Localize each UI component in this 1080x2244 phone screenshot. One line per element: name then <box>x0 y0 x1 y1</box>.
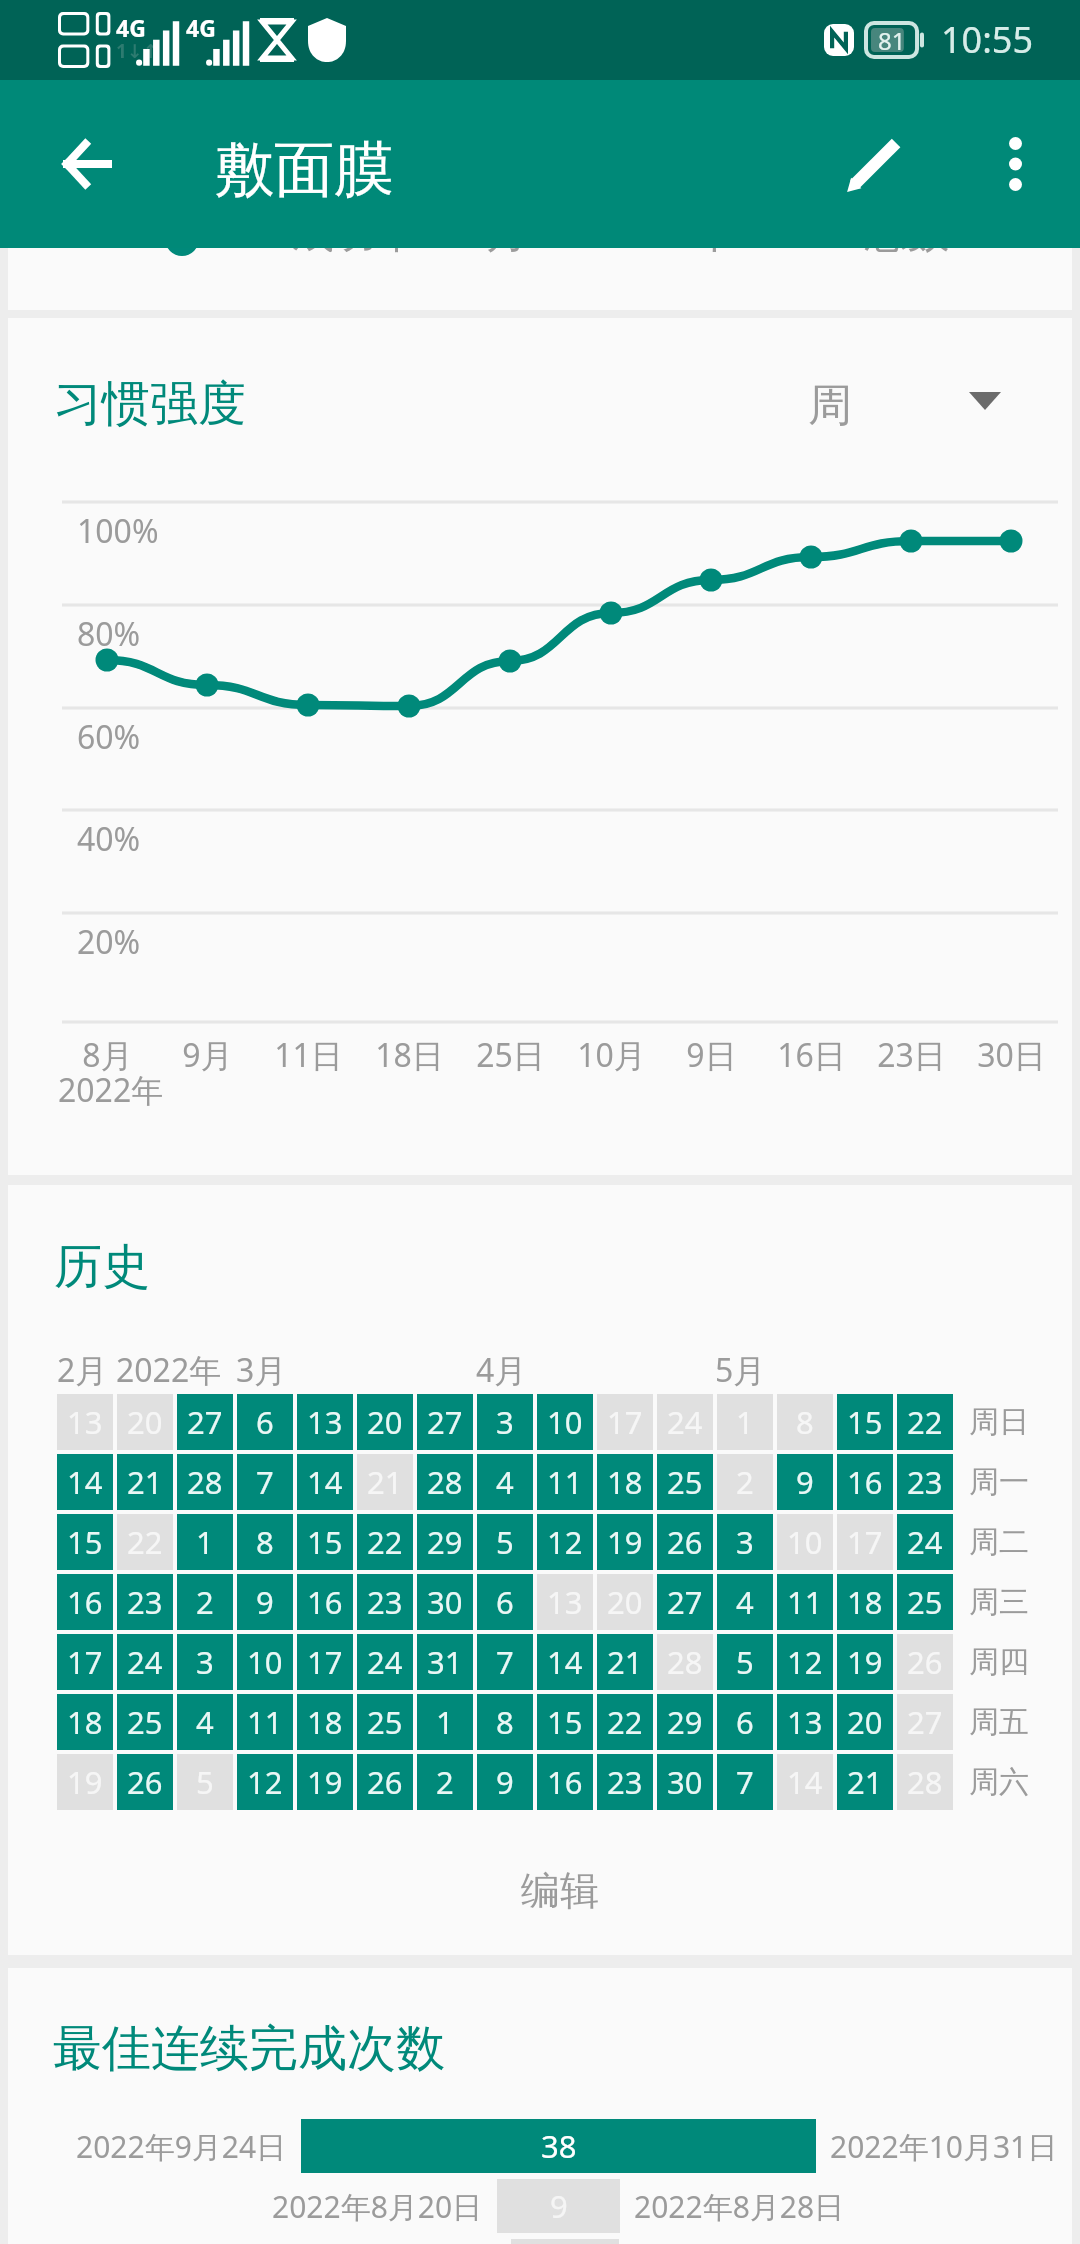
button[interactable]: 12 <box>777 1634 833 1690</box>
button[interactable]: 29 <box>417 1514 473 1570</box>
button[interactable]: 21 <box>597 1634 653 1690</box>
button[interactable]: 19 <box>297 1754 353 1810</box>
button[interactable]: 2 <box>417 1754 473 1810</box>
button[interactable]: 6 <box>717 1694 773 1750</box>
button[interactable]: 26 <box>657 1514 713 1570</box>
button[interactable]: 13 <box>297 1394 353 1450</box>
button[interactable]: 13 <box>57 1394 113 1450</box>
button[interactable]: 29 <box>657 1694 713 1750</box>
button[interactable]: 30 <box>417 1574 473 1630</box>
button[interactable]: 26 <box>117 1754 173 1810</box>
button[interactable]: 10 <box>237 1634 293 1690</box>
button[interactable]: 14 <box>297 1454 353 1510</box>
button[interactable]: 7 <box>237 1454 293 1510</box>
button[interactable]: 23 <box>117 1574 173 1630</box>
button[interactable]: 20 <box>597 1574 653 1630</box>
button[interactable]: 26 <box>897 1634 953 1690</box>
button[interactable]: 19 <box>597 1514 653 1570</box>
button[interactable]: 8 <box>477 1694 533 1750</box>
button[interactable]: 12 <box>237 1754 293 1810</box>
button[interactable]: 11 <box>537 1454 593 1510</box>
button[interactable]: 15 <box>297 1514 353 1570</box>
button[interactable]: 2 <box>177 1574 233 1630</box>
button[interactable]: 28 <box>897 1754 953 1810</box>
button[interactable]: 11 <box>777 1574 833 1630</box>
button[interactable]: 2 <box>717 1454 773 1510</box>
button[interactable]: 18 <box>837 1574 893 1630</box>
button[interactable]: 7 <box>717 1754 773 1810</box>
button[interactable]: 20 <box>837 1694 893 1750</box>
button[interactable]: 26 <box>357 1754 413 1810</box>
button[interactable]: 14 <box>57 1454 113 1510</box>
button[interactable]: 4 <box>717 1574 773 1630</box>
button[interactable]: 11 <box>237 1694 293 1750</box>
button[interactable]: 27 <box>657 1574 713 1630</box>
button[interactable]: 15 <box>57 1514 113 1570</box>
button[interactable]: 17 <box>297 1634 353 1690</box>
button[interactable]: 6 <box>237 1394 293 1450</box>
button[interactable]: 23 <box>897 1454 953 1510</box>
button[interactable]: 25 <box>117 1694 173 1750</box>
button[interactable]: 17 <box>597 1394 653 1450</box>
button[interactable]: 9 <box>477 1754 533 1810</box>
button[interactable]: 31 <box>417 1634 473 1690</box>
button[interactable]: 1 <box>417 1694 473 1750</box>
button[interactable]: 10 <box>777 1514 833 1570</box>
button[interactable]: 3 <box>717 1514 773 1570</box>
button[interactable]: 24 <box>117 1634 173 1690</box>
button[interactable]: 1 <box>717 1394 773 1450</box>
button[interactable]: 14 <box>537 1634 593 1690</box>
button[interactable]: 24 <box>897 1514 953 1570</box>
button[interactable]: Change interval <box>956 372 1014 430</box>
button[interactable]: 22 <box>357 1514 413 1570</box>
button[interactable]: 18 <box>297 1694 353 1750</box>
button[interactable]: More options <box>968 108 1062 220</box>
button[interactable]: 23 <box>357 1574 413 1630</box>
button[interactable]: 15 <box>537 1694 593 1750</box>
button[interactable]: 15 <box>837 1394 893 1450</box>
button[interactable]: 16 <box>297 1574 353 1630</box>
button[interactable]: 16 <box>837 1454 893 1510</box>
button[interactable]: 21 <box>837 1754 893 1810</box>
button[interactable]: 10 <box>537 1394 593 1450</box>
button[interactable]: 13 <box>537 1574 593 1630</box>
button[interactable]: 1 <box>177 1514 233 1570</box>
button[interactable]: 9 <box>777 1454 833 1510</box>
button[interactable]: 4 <box>477 1454 533 1510</box>
button[interactable]: 30 <box>657 1754 713 1810</box>
button[interactable]: 5 <box>177 1754 233 1810</box>
button[interactable]: 5 <box>477 1514 533 1570</box>
button[interactable]: 12 <box>537 1514 593 1570</box>
button[interactable]: 25 <box>657 1454 713 1510</box>
button[interactable]: 28 <box>657 1634 713 1690</box>
button[interactable]: 23 <box>597 1754 653 1810</box>
button[interactable]: Edit <box>819 108 931 220</box>
button[interactable]: 28 <box>417 1454 473 1510</box>
button[interactable]: 27 <box>177 1394 233 1450</box>
button[interactable]: 18 <box>597 1454 653 1510</box>
button[interactable]: 9 <box>237 1574 293 1630</box>
button[interactable]: 25 <box>897 1574 953 1630</box>
button[interactable]: 16 <box>57 1574 113 1630</box>
button[interactable]: 7 <box>477 1634 533 1690</box>
button[interactable]: 21 <box>117 1454 173 1510</box>
button[interactable]: 16 <box>537 1754 593 1810</box>
button[interactable]: 编辑 <box>521 1866 599 1915</box>
button[interactable]: 20 <box>117 1394 173 1450</box>
button[interactable]: 17 <box>837 1514 893 1570</box>
button[interactable]: 24 <box>357 1634 413 1690</box>
button[interactable]: 8 <box>777 1394 833 1450</box>
button[interactable]: 27 <box>417 1394 473 1450</box>
button[interactable]: 17 <box>57 1634 113 1690</box>
button[interactable]: 24 <box>657 1394 713 1450</box>
button[interactable]: 6 <box>477 1574 533 1630</box>
button[interactable]: 19 <box>57 1754 113 1810</box>
button[interactable]: Back <box>34 112 138 216</box>
button[interactable]: 3 <box>177 1634 233 1690</box>
button[interactable]: 21 <box>357 1454 413 1510</box>
button[interactable]: 22 <box>117 1514 173 1570</box>
button[interactable]: 8 <box>237 1514 293 1570</box>
button[interactable]: 19 <box>837 1634 893 1690</box>
button[interactable]: 4 <box>177 1694 233 1750</box>
button[interactable]: 22 <box>897 1394 953 1450</box>
